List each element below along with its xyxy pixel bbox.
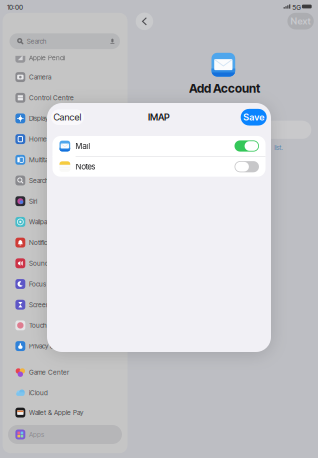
button[interactable]: Control Centre xyxy=(8,88,122,107)
staticText: Apple Pencil xyxy=(29,54,65,62)
button[interactable]: Notifications xyxy=(8,233,122,252)
staticText: Siri xyxy=(29,197,37,205)
staticText: Apps xyxy=(29,431,44,438)
button[interactable]: Multitasking xyxy=(8,150,122,169)
staticText: Home Screen xyxy=(29,135,70,143)
staticText: Focus xyxy=(29,280,46,288)
staticText: list. xyxy=(274,144,283,151)
staticText: Wallpaper xyxy=(29,218,57,226)
button[interactable]: Notes xyxy=(52,157,265,177)
staticText: Wallet & Apple Pay xyxy=(29,409,83,417)
button[interactable]: Home Screen xyxy=(8,130,122,149)
button[interactable]: Apps xyxy=(8,425,122,444)
staticText: Touch ID & Passcode xyxy=(29,321,90,329)
staticText: Sounds xyxy=(29,259,52,267)
staticText: 5G xyxy=(292,4,301,12)
button[interactable]: Wallet & Apple Pay xyxy=(8,403,122,422)
button[interactable]: Mail xyxy=(52,136,265,156)
staticText: Mail xyxy=(75,141,90,151)
staticText: Add Account xyxy=(189,81,260,95)
staticText: Notes xyxy=(75,162,95,171)
staticText: Privacy & Security xyxy=(29,342,79,350)
button[interactable]: Camera xyxy=(8,68,122,87)
button[interactable]: Search xyxy=(9,33,120,49)
button[interactable]: Screen Time xyxy=(8,295,122,314)
button[interactable]: Siri xyxy=(8,192,122,211)
button[interactable]: iCloud xyxy=(8,383,122,402)
staticText: Cancel xyxy=(53,112,81,123)
staticText: Screen Time xyxy=(29,301,66,309)
button[interactable]: Next xyxy=(287,13,314,29)
button[interactable]: Game Center xyxy=(8,363,122,382)
staticText: Search xyxy=(27,37,47,45)
staticText: Multitasking xyxy=(29,156,63,164)
button[interactable]: Touch ID & Passcode xyxy=(8,316,122,335)
button[interactable]: Focus xyxy=(8,274,122,293)
button[interactable]: Cancel xyxy=(51,109,84,125)
staticText: Next xyxy=(291,16,311,27)
staticText: IMAP xyxy=(148,111,170,122)
staticText: Game Center xyxy=(29,368,69,376)
staticText: Control Centre xyxy=(29,94,74,102)
button[interactable]: Save xyxy=(241,109,267,125)
staticText: Notifications xyxy=(29,239,64,247)
staticText: iCloud xyxy=(29,389,48,397)
staticText: Display & Brightness xyxy=(29,114,87,122)
staticText: Camera xyxy=(29,73,51,81)
button[interactable]: Privacy & Security xyxy=(8,337,122,356)
button[interactable]: Apple Pencil xyxy=(8,48,122,67)
staticText: Save xyxy=(243,112,264,123)
button[interactable]: Sounds xyxy=(8,254,122,273)
staticText: 10:00 xyxy=(7,3,23,11)
button[interactable]: Display & Brightness xyxy=(8,109,122,128)
button[interactable]: Search xyxy=(8,171,122,190)
button[interactable]: Wallpaper xyxy=(8,212,122,231)
staticText: Search xyxy=(29,177,49,184)
button[interactable]: Back xyxy=(136,13,153,30)
